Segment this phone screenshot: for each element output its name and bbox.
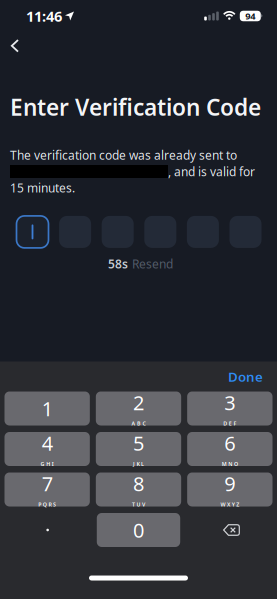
staticText: 9: [224, 470, 235, 497]
staticText: DEF: [223, 420, 236, 427]
staticText: 5: [133, 430, 144, 456]
staticText: 2: [133, 389, 144, 416]
button[interactable]: 7: [4, 472, 90, 506]
staticText: PQRS: [38, 501, 56, 508]
staticText: TUV: [132, 501, 145, 508]
button[interactable]: Delete: [186, 513, 272, 547]
button[interactable]: 2: [96, 391, 181, 425]
button[interactable]: Resend: [132, 256, 173, 272]
staticText: 11:46: [26, 6, 62, 26]
staticText: 0: [133, 517, 144, 543]
button[interactable]: Back: [3, 31, 27, 57]
staticText: Resend: [132, 256, 173, 272]
button[interactable]: 6: [187, 432, 272, 466]
staticText: 7: [42, 470, 53, 497]
button[interactable]: 0: [97, 513, 180, 547]
staticText: GHI: [41, 460, 54, 468]
staticText: 4: [42, 430, 53, 456]
button[interactable]: 4: [4, 432, 90, 466]
staticText: 6: [224, 430, 235, 456]
button[interactable]: 5: [96, 432, 181, 466]
button[interactable]: Decimal point: [4, 513, 91, 547]
staticText: The verification code was already sent t…: [10, 147, 237, 163]
button[interactable]: 1: [4, 391, 90, 425]
staticText: JKL: [133, 460, 144, 468]
staticText: 15 minutes.: [10, 180, 75, 196]
button[interactable]: 9: [187, 472, 272, 506]
button[interactable]: Done: [228, 368, 277, 385]
staticText: 58s: [108, 256, 128, 272]
staticText: 3: [224, 389, 235, 416]
staticText: Done: [228, 368, 263, 385]
button[interactable]: 8: [96, 472, 181, 506]
staticText: ABC: [131, 420, 146, 427]
button[interactable]: 3: [187, 391, 272, 425]
staticText: WXYZ: [220, 501, 239, 508]
staticText: 8: [133, 470, 144, 497]
staticText: 94: [245, 10, 255, 22]
staticText: , and is valid for: [168, 163, 255, 179]
staticText: MNO: [222, 460, 238, 468]
staticText: Enter Verification Code: [10, 92, 261, 122]
staticText: 1: [42, 395, 53, 422]
